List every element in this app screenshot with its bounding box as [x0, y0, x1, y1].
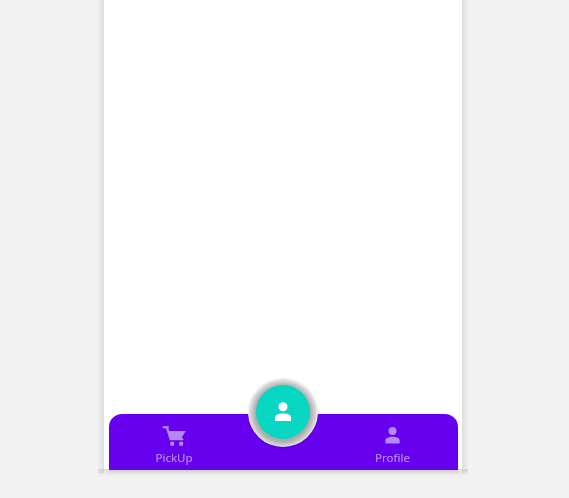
button[interactable]: Profile [346, 420, 438, 468]
staticText: Profile [375, 450, 410, 466]
button[interactable]: PickUp [128, 420, 220, 468]
staticText: PickUp [155, 450, 193, 466]
button[interactable]: Account [256, 385, 310, 439]
